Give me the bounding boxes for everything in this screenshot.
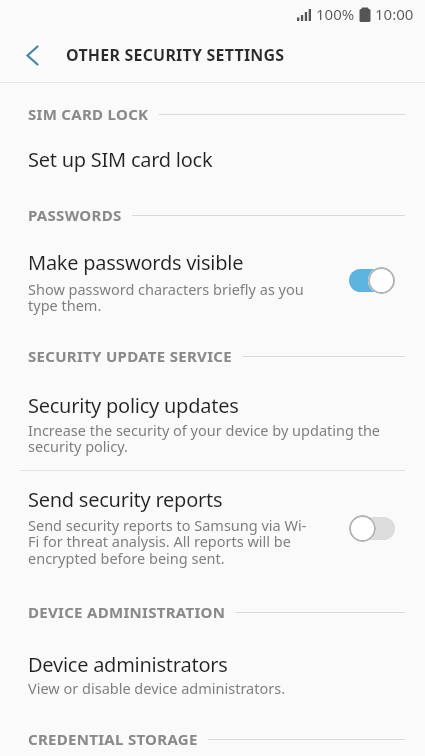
staticText: CREDENTIAL STORAGE <box>28 729 198 749</box>
button[interactable] <box>14 40 50 70</box>
button[interactable]: Set up SIM card lock <box>0 134 425 184</box>
staticText: Send security reports <box>28 486 223 513</box>
staticText: View or disable device administrators. <box>28 678 286 698</box>
staticText: PASSWORDS <box>28 205 122 225</box>
button[interactable]: Make passwords visible <box>0 240 425 320</box>
staticText: 100% <box>316 4 355 24</box>
staticText: 10:00 <box>375 4 414 24</box>
staticText: SECURITY UPDATE SERVICE <box>28 346 232 366</box>
staticText: OTHER SECURITY SETTINGS <box>66 44 285 66</box>
staticText: Send security reports to Samsung via Wi-… <box>28 515 307 568</box>
staticText: Device administrators <box>28 651 228 678</box>
button[interactable]: Send security reports <box>0 478 425 573</box>
staticText: DEVICE ADMINISTRATION <box>28 602 226 622</box>
staticText: Security policy updates <box>28 392 239 419</box>
staticText: Show password characters briefly as you … <box>28 279 304 315</box>
staticText: Increase the security of your device by … <box>28 420 381 456</box>
staticText: SIM CARD LOCK <box>28 104 149 124</box>
staticText: Set up SIM card lock <box>28 146 213 173</box>
button[interactable]: Security policy updates <box>0 383 425 458</box>
staticText: Make passwords visible <box>28 249 244 276</box>
button[interactable]: Device administrators <box>0 640 425 700</box>
